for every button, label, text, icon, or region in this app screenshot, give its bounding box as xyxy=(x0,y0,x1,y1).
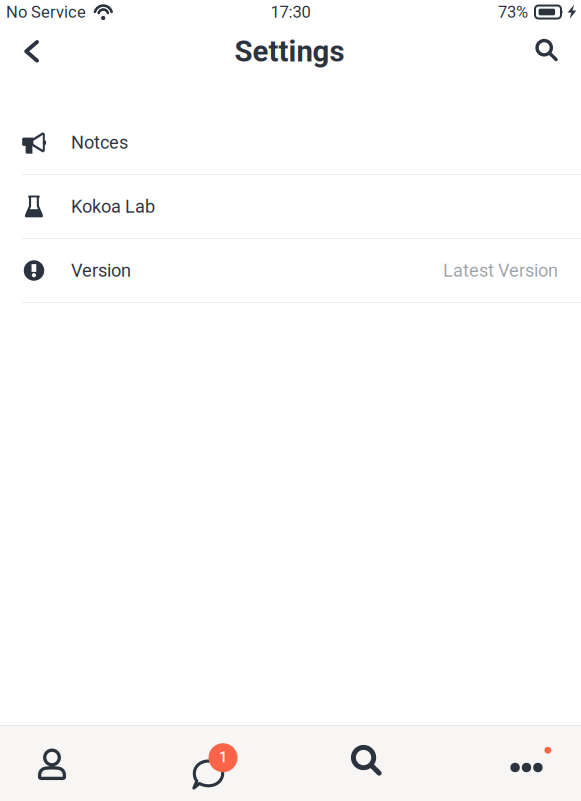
button[interactable]: Search xyxy=(313,726,426,801)
staticText: Settings xyxy=(234,34,344,69)
staticText: Version xyxy=(71,260,131,281)
button[interactable]: More xyxy=(426,726,581,801)
button[interactable]: Back xyxy=(8,24,54,76)
button[interactable]: Notces xyxy=(0,111,581,175)
staticText: Notces xyxy=(71,132,128,153)
button[interactable]: Search xyxy=(526,24,572,76)
button[interactable]: Chats, 1 unread xyxy=(104,726,313,801)
staticText: Kokoa Lab xyxy=(71,196,155,217)
staticText: No Service xyxy=(6,2,86,22)
staticText: Latest Version xyxy=(443,260,558,281)
staticText: 73% xyxy=(498,2,528,22)
button[interactable]: Profile xyxy=(0,726,104,801)
staticText: 1 xyxy=(219,749,227,766)
staticText: 17:30 xyxy=(270,2,310,22)
button[interactable]: Version xyxy=(0,239,581,303)
button[interactable]: Kokoa Lab xyxy=(0,175,581,239)
